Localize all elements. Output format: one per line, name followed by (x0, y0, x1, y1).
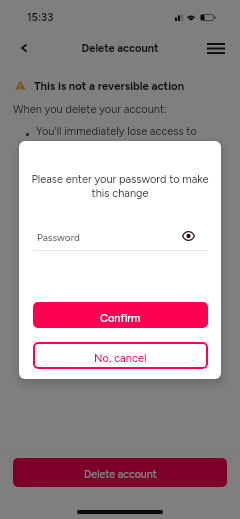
staticText: Password (37, 231, 80, 243)
staticText: Confirm (100, 312, 141, 325)
button[interactable]: Back (10, 34, 38, 62)
button[interactable]: Delete account (13, 458, 227, 487)
staticText: Please enter your password to make this … (28, 173, 212, 200)
staticText: Delete account (0, 42, 240, 55)
staticText: 15:33 (27, 11, 54, 24)
staticText: When you delete your account: (13, 103, 167, 116)
staticText: This is not a reversible action (34, 79, 185, 93)
button[interactable]: Menu (201, 34, 230, 63)
staticText: You'll immediately lose access to (36, 125, 197, 138)
button[interactable]: No, cancel (33, 342, 208, 369)
button[interactable]: Confirm (33, 302, 208, 328)
button[interactable]: Show password (179, 229, 197, 243)
staticText: No, cancel (94, 352, 147, 365)
staticText: Delete account (84, 468, 157, 481)
